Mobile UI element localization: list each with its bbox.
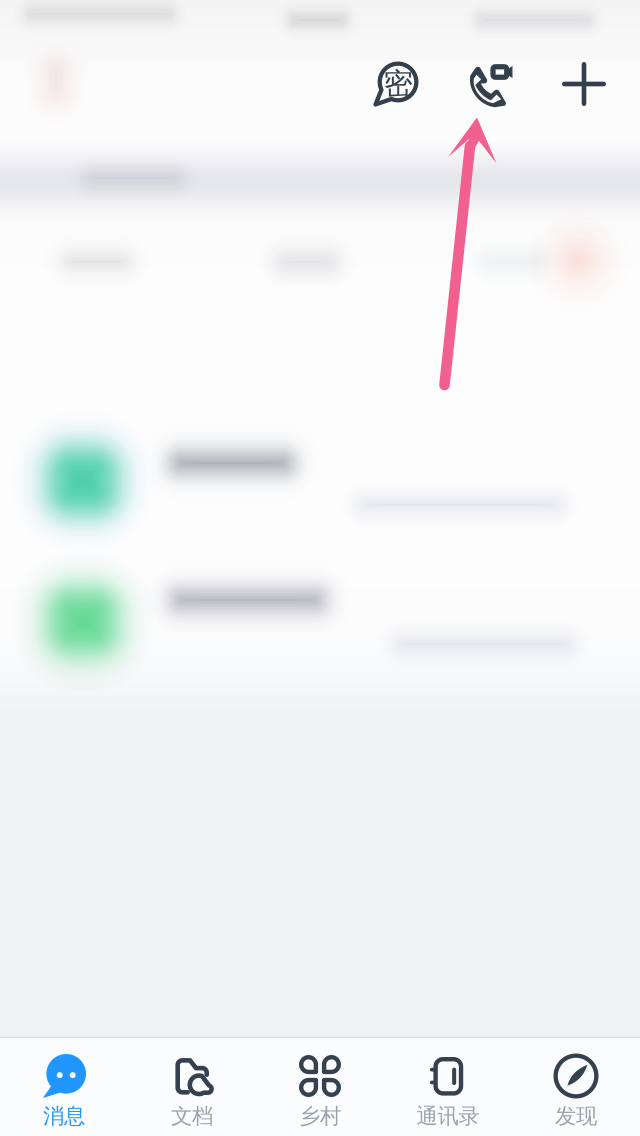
button[interactable]: 文档	[128, 1038, 256, 1136]
button[interactable]: 通讯录	[384, 1038, 512, 1136]
button[interactable]: 发现	[512, 1038, 640, 1136]
button[interactable]: 密聊	[350, 38, 442, 130]
staticText: 消息	[43, 1103, 85, 1129]
staticText: 通讯录	[416, 1103, 479, 1129]
staticText: 乡村	[299, 1103, 341, 1129]
button[interactable]: 消息	[0, 1038, 128, 1136]
staticText: 文档	[171, 1103, 213, 1129]
button[interactable]: 视频会议	[444, 38, 536, 130]
button[interactable]: 添加	[538, 38, 630, 130]
staticText: 发现	[555, 1103, 597, 1129]
staticText: 密	[383, 66, 412, 102]
button[interactable]: 乡村	[256, 1038, 384, 1136]
